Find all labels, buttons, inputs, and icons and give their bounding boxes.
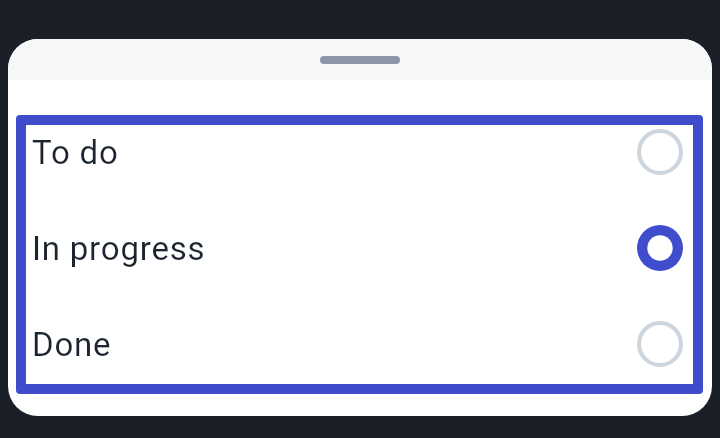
staticText: Done bbox=[32, 325, 112, 364]
button[interactable]: Done bbox=[26, 296, 693, 384]
staticText: In progress bbox=[32, 229, 206, 268]
staticText: To do bbox=[32, 133, 119, 172]
other: To do bbox=[637, 129, 683, 175]
button[interactable]: Drag handle bbox=[8, 39, 712, 80]
button[interactable]: In progress bbox=[26, 200, 693, 296]
other: In progress selected bbox=[637, 225, 683, 271]
other: Done bbox=[637, 321, 683, 367]
button[interactable]: To do bbox=[26, 125, 693, 200]
